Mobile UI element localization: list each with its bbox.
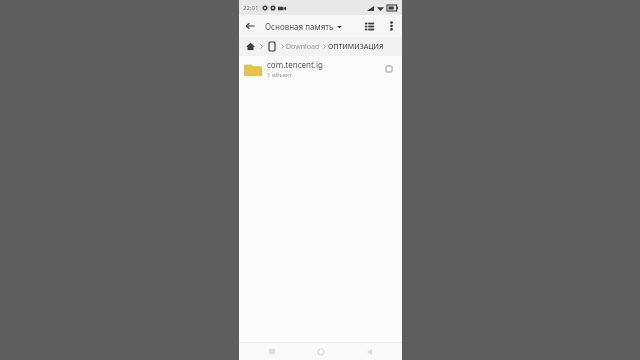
button[interactable]: List view bbox=[358, 15, 380, 37]
button[interactable]: com.tencent.ig bbox=[239, 56, 402, 82]
button[interactable]: Home bbox=[306, 343, 336, 360]
button[interactable]: More options bbox=[380, 15, 402, 37]
button[interactable]: Download bbox=[286, 42, 320, 52]
button[interactable]: Back bbox=[354, 343, 384, 360]
button[interactable]: Home bbox=[244, 40, 257, 53]
staticText: Download bbox=[286, 42, 320, 52]
staticText: 1 объект bbox=[267, 71, 293, 79]
button[interactable]: Select com.tencent.ig bbox=[381, 61, 397, 77]
button[interactable]: Основная память bbox=[265, 21, 358, 32]
button[interactable]: Back bbox=[239, 15, 261, 37]
button[interactable]: Recents bbox=[257, 343, 287, 360]
staticText: com.tencent.ig bbox=[267, 59, 323, 70]
staticText: Основная память bbox=[265, 21, 334, 32]
staticText: 22:01 bbox=[243, 4, 259, 12]
button[interactable]: Device storage bbox=[265, 40, 278, 53]
button[interactable]: ОПТИМИЗАЦИЯ bbox=[328, 42, 384, 52]
staticText: ОПТИМИЗАЦИЯ bbox=[328, 42, 384, 52]
